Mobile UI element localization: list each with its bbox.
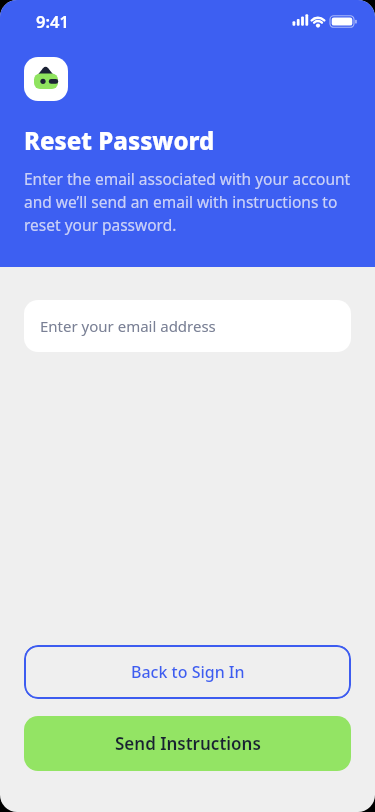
staticText: 9:41 — [36, 10, 69, 32]
button[interactable]: Send Instructions — [24, 716, 351, 771]
staticText: Back to Sign In — [131, 661, 245, 683]
staticText: Enter the email associated with your acc… — [24, 168, 351, 236]
button[interactable]: Enter your email address — [24, 300, 351, 352]
staticText: Send Instructions — [115, 732, 261, 755]
button[interactable] — [24, 57, 68, 101]
button[interactable]: Back to Sign In — [24, 645, 351, 699]
staticText: Reset Password — [24, 124, 215, 157]
staticText: Enter your email address — [40, 316, 216, 336]
